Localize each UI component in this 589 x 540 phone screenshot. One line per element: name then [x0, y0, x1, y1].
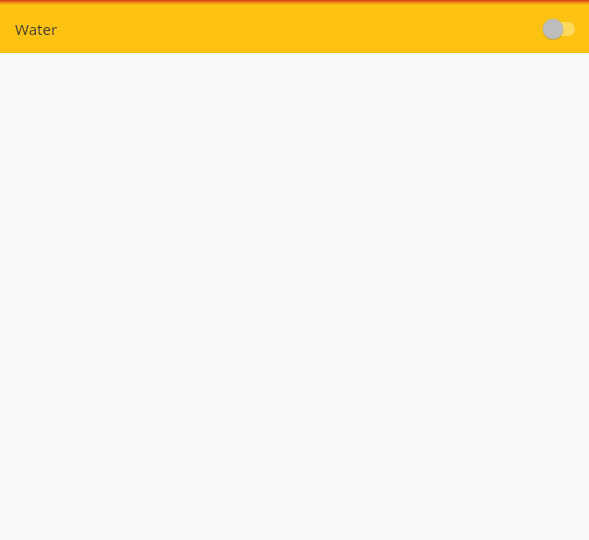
button[interactable]: Toggle Water: [538, 14, 584, 44]
staticText: Water: [15, 19, 58, 39]
